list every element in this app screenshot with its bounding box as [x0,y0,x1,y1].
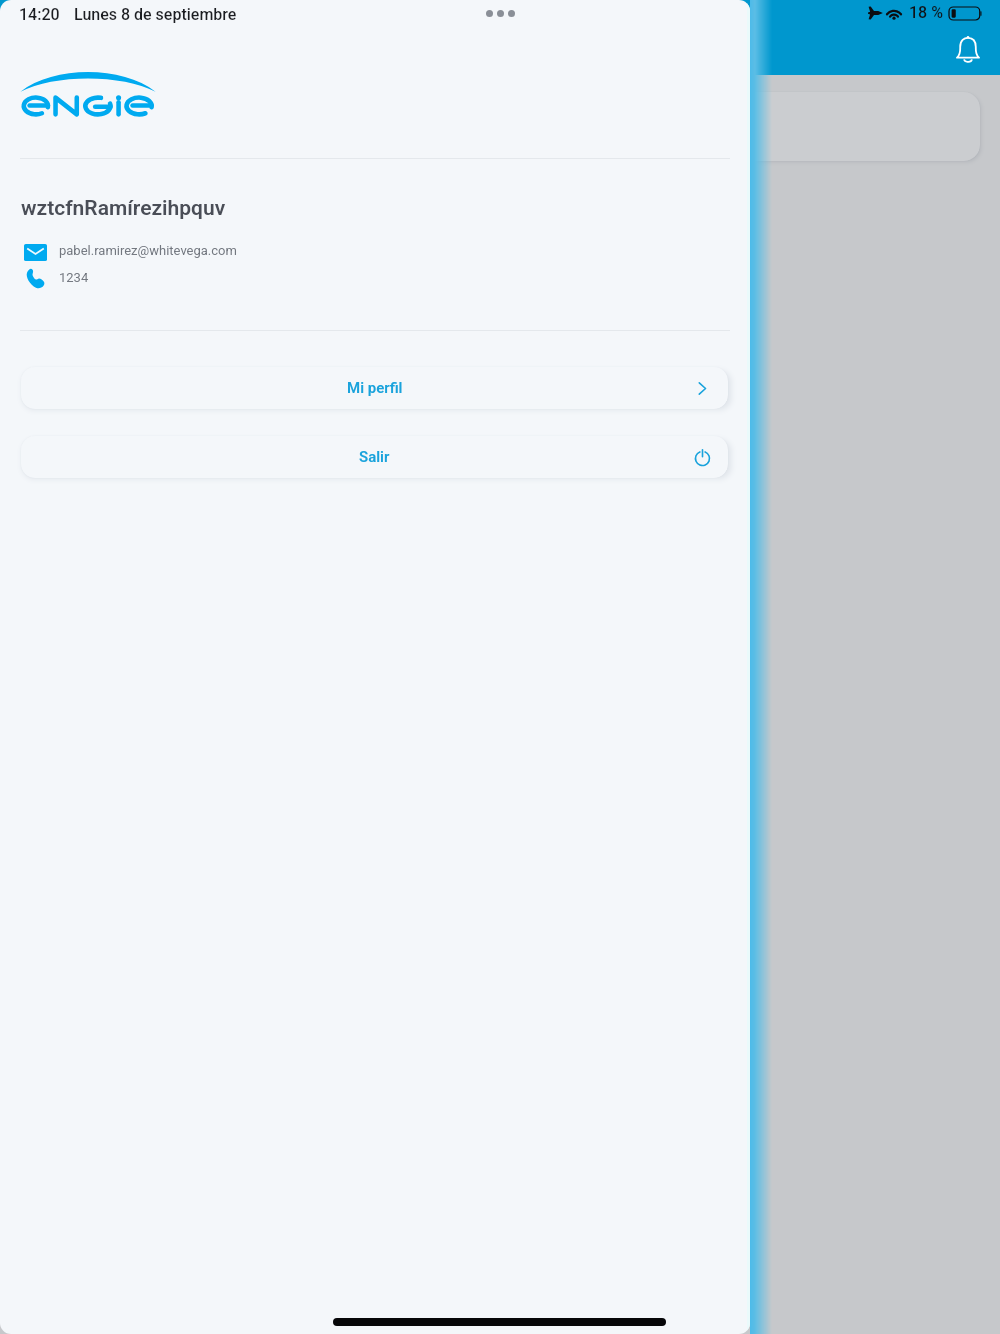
staticText: wztcfnRamírezihpquv [21,196,226,221]
staticText: Lunes 8 de septiembre [74,5,237,24]
staticText: pabel.ramirez@whitevega.com [59,243,237,258]
button[interactable]: Notifications [946,31,989,69]
staticText: 14:20 [19,5,60,24]
button[interactable]: Mi perfil [21,367,728,409]
staticText: 1234 [59,270,89,285]
staticText: Mi perfil [347,379,403,397]
staticText: Salir [359,448,390,466]
staticText: 18 % [909,3,943,22]
button[interactable]: Salir [21,436,728,478]
